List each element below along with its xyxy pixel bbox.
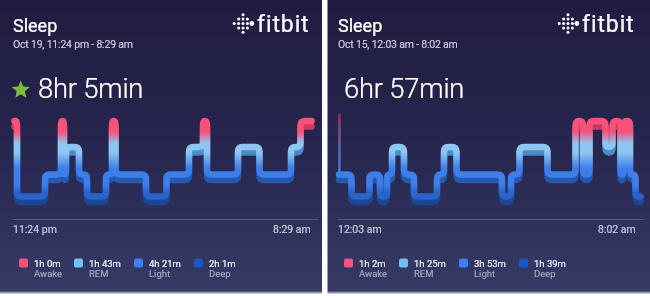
staticText: 8:29 am	[273, 223, 311, 235]
staticText: REM	[414, 268, 434, 279]
staticText: Light	[474, 268, 496, 279]
staticText: REM	[89, 268, 109, 279]
staticText: 8hr 5min	[38, 73, 144, 105]
staticText: Sleep	[13, 15, 58, 36]
staticText: 1h 2m	[359, 258, 386, 269]
staticText: Oct 15, 12:03 am - 8:02 am	[338, 38, 458, 50]
staticText: 8:02 am	[598, 223, 636, 235]
staticText: Awake	[34, 268, 63, 279]
staticText: 1h 43m	[89, 258, 121, 269]
staticText: 6hr 57min	[344, 73, 465, 105]
staticText: Oct 19, 11:24 pm - 8:29 am	[13, 38, 133, 50]
staticText: Deep	[534, 268, 556, 279]
staticText: 1h 0m	[34, 258, 61, 269]
staticText: 2h 1m	[209, 258, 236, 269]
staticText: Awake	[359, 268, 388, 279]
staticText: 3h 53m	[474, 258, 506, 269]
staticText: Deep	[209, 268, 231, 279]
staticText: 1h 39m	[534, 258, 566, 269]
staticText: Light	[149, 268, 171, 279]
staticText: fitbit	[257, 11, 310, 38]
staticText: Sleep	[338, 15, 383, 36]
staticText: fitbit	[582, 11, 635, 38]
staticText: 11:24 pm	[13, 223, 57, 235]
staticText: 12:03 am	[338, 223, 382, 235]
staticText: 1h 25m	[414, 258, 446, 269]
staticText: 4h 21m	[149, 258, 181, 269]
